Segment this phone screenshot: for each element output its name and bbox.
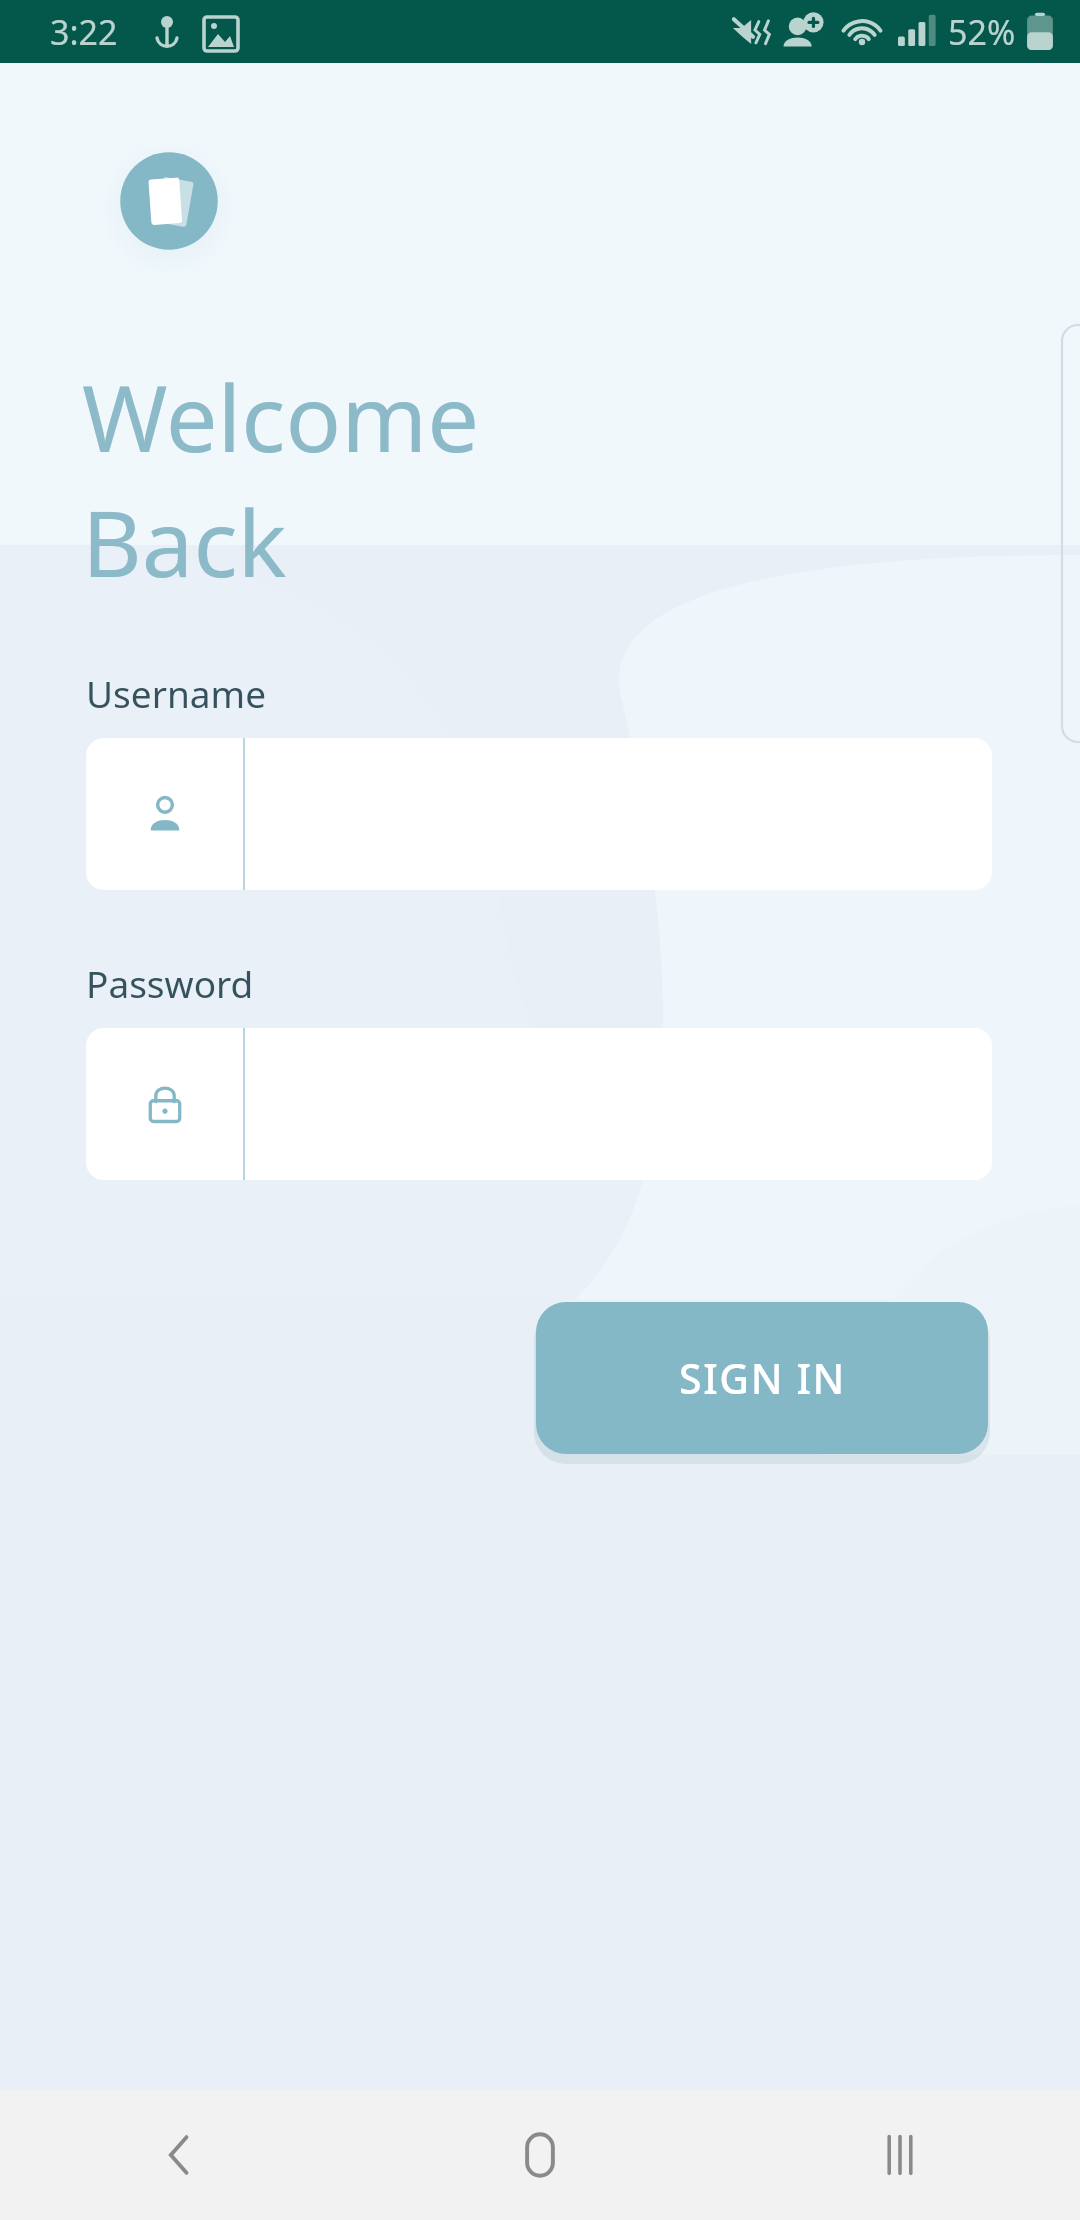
staticText: Password xyxy=(86,958,254,1008)
staticText: Welcome xyxy=(82,354,480,479)
button[interactable]: Home xyxy=(360,2090,720,2220)
staticText: SIGN IN xyxy=(679,1350,846,1406)
button[interactable] xyxy=(86,738,992,890)
button[interactable]: Recent apps xyxy=(720,2090,1080,2220)
button[interactable]: SIGN IN xyxy=(536,1302,988,1454)
staticText: 52% xyxy=(948,9,1016,55)
staticText: 3:22 xyxy=(50,9,118,55)
button[interactable]: Back xyxy=(0,2090,360,2220)
staticText: Username xyxy=(86,668,267,718)
button[interactable] xyxy=(86,1028,992,1180)
staticText: Back xyxy=(82,479,287,604)
